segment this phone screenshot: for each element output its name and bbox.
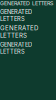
staticText: GENERATED LETTERS: [0, 24, 38, 39]
staticText: GENERATED LETTERS: [0, 41, 32, 55]
staticText: GENERATED LETTERS: [0, 8, 32, 22]
staticText: GENERATED LETTERS: [0, 0, 53, 6]
